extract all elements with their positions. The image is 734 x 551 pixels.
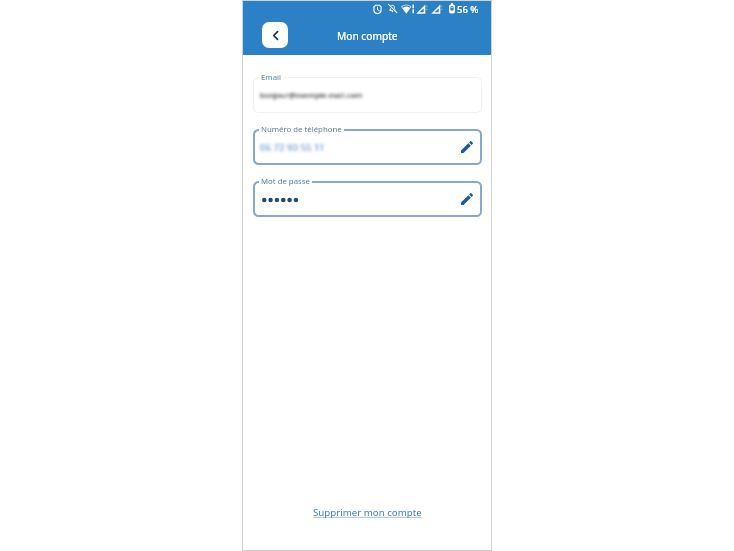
staticText: 56 % <box>457 3 479 16</box>
button[interactable] <box>253 129 482 165</box>
button[interactable]: Modifier <box>457 137 477 157</box>
staticText: 06 72 90 55 11 <box>260 141 325 154</box>
staticText: Numéro de téléphone <box>261 124 342 135</box>
staticText: bonjour@exemple-mail.com <box>260 90 363 100</box>
button[interactable] <box>253 181 482 217</box>
button[interactable]: Modifier <box>457 189 477 209</box>
button[interactable]: Supprimer mon compte <box>308 503 427 522</box>
staticText: bonjour@exemple-mail.com <box>260 90 363 100</box>
button[interactable]: Retour <box>262 22 288 48</box>
staticText: 06 72 90 55 11 <box>260 141 325 154</box>
staticText: bonjour@exemple-mail.com <box>260 90 363 100</box>
staticText: Mon compte <box>337 29 398 43</box>
staticText: Supprimer mon compte <box>313 506 422 519</box>
staticText: 06 72 90 55 11 <box>260 141 325 154</box>
staticText: Mot de passe <box>261 176 310 187</box>
button[interactable] <box>253 77 482 113</box>
staticText: Email <box>261 72 282 83</box>
